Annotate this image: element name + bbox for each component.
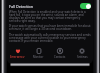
staticText: When Fall Detection is enabled and your … [9, 10, 91, 23]
staticText: Fall Detection [9, 4, 34, 9]
staticText: Settings [77, 55, 88, 58]
staticText: Emergency [10, 55, 25, 58]
staticText: If your watch senses that you have been … [9, 24, 91, 31]
staticText: Contacts [54, 55, 66, 58]
staticText: Monitor [33, 55, 44, 58]
button[interactable]: Settings [71, 47, 93, 58]
staticText: The watch automatically calls emergency … [9, 33, 91, 43]
button[interactable]: Contacts [49, 47, 71, 58]
button[interactable]: Fall detection toggle [80, 3, 91, 9]
button[interactable]: Emergency [7, 47, 28, 58]
button[interactable]: Monitor [28, 47, 49, 58]
